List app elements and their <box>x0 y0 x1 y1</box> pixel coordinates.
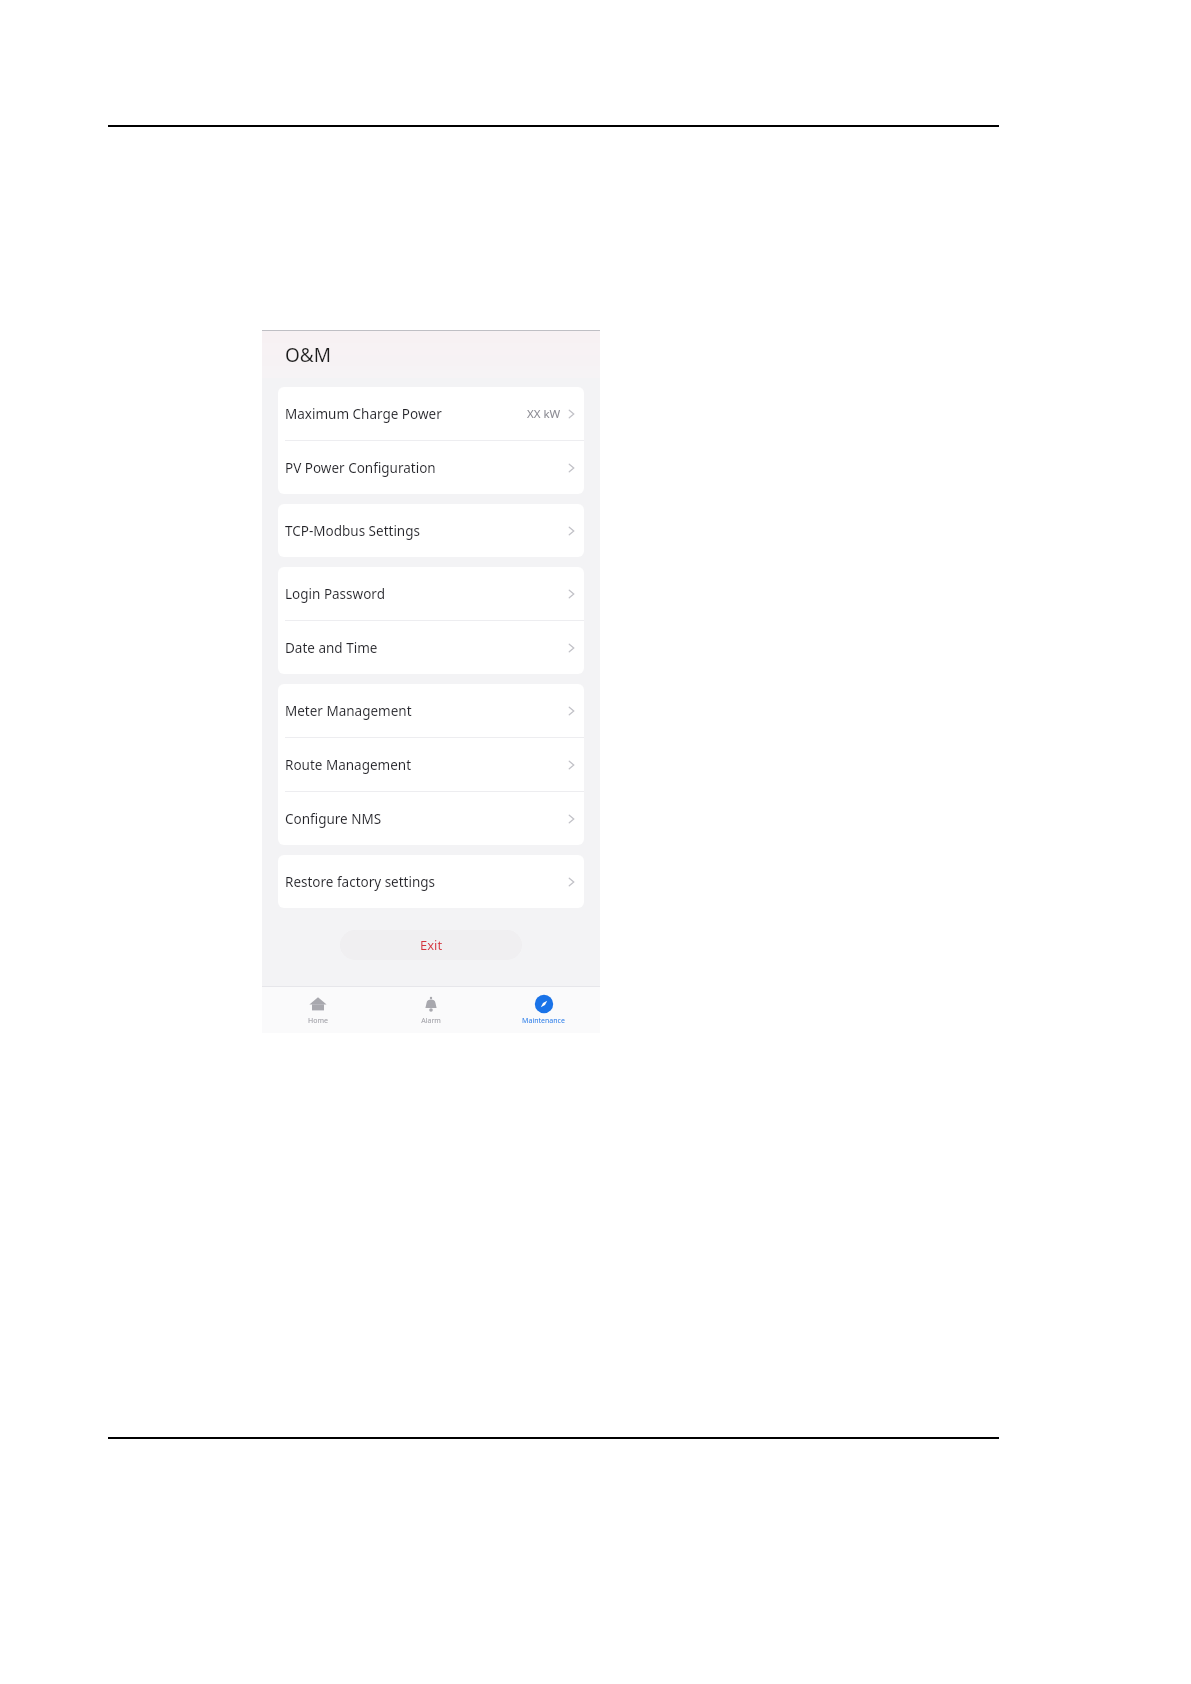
staticText: Exit <box>420 936 443 954</box>
button[interactable]: Exit <box>340 930 522 960</box>
staticText: TCP-Modbus Settings <box>285 522 568 540</box>
staticText: Date and Time <box>285 639 568 657</box>
button[interactable]: Home <box>262 987 374 1033</box>
button[interactable]: Restore factory settings <box>278 855 584 908</box>
staticText: XX kW <box>527 406 561 422</box>
staticText: Route Management <box>285 756 568 774</box>
staticText: Login Password <box>285 585 568 603</box>
staticText: Meter Management <box>285 702 568 720</box>
button[interactable]: Route Management <box>278 738 584 791</box>
staticText: Home <box>308 1016 328 1026</box>
button[interactable]: Meter Management <box>278 684 584 737</box>
staticText: Configure NMS <box>285 810 568 828</box>
staticText: Restore factory settings <box>285 873 568 891</box>
button[interactable]: Login Password <box>278 567 584 620</box>
button[interactable]: TCP-Modbus Settings <box>278 504 584 557</box>
staticText: PV Power Configuration <box>285 459 568 477</box>
button[interactable]: Date and Time <box>278 621 584 674</box>
button[interactable]: Maximum Charge Power <box>278 387 584 440</box>
staticText: O&M <box>285 342 331 368</box>
button[interactable]: Configure NMS <box>278 792 584 845</box>
staticText: Maximum Charge Power <box>285 405 527 423</box>
staticText: Maintenance <box>522 1016 565 1026</box>
button[interactable]: PV Power Configuration <box>278 441 584 494</box>
button[interactable]: Alarm <box>374 987 487 1033</box>
button[interactable]: Maintenance <box>487 987 600 1033</box>
staticText: Alarm <box>421 1016 441 1026</box>
